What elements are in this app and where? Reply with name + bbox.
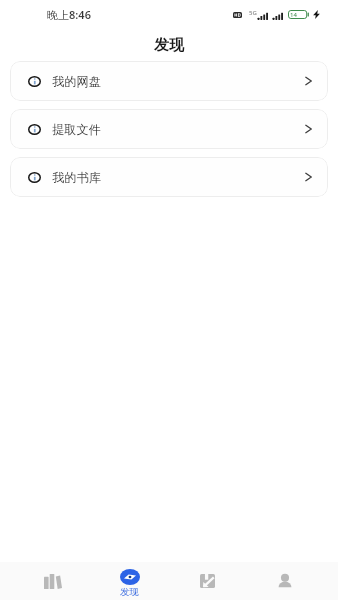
staticText: 发现 xyxy=(154,36,184,55)
button[interactable]: 提取文件 xyxy=(10,109,328,149)
staticText: 发现 xyxy=(120,586,139,598)
button[interactable]: Import xyxy=(168,562,246,600)
button[interactable]: Profile xyxy=(246,562,324,600)
staticText: 提取文件 xyxy=(52,122,101,137)
staticText: 晚上8:46 xyxy=(47,7,91,22)
staticText: 5G xyxy=(249,9,257,17)
button[interactable]: 我的书库 xyxy=(10,157,328,197)
staticText: 14 xyxy=(290,11,297,19)
staticText: 我的书库 xyxy=(52,170,101,185)
button[interactable]: 发现 xyxy=(91,562,168,600)
button[interactable]: Library xyxy=(14,562,91,600)
button[interactable]: 我的网盘 xyxy=(10,61,328,101)
staticText: 我的网盘 xyxy=(52,74,101,89)
